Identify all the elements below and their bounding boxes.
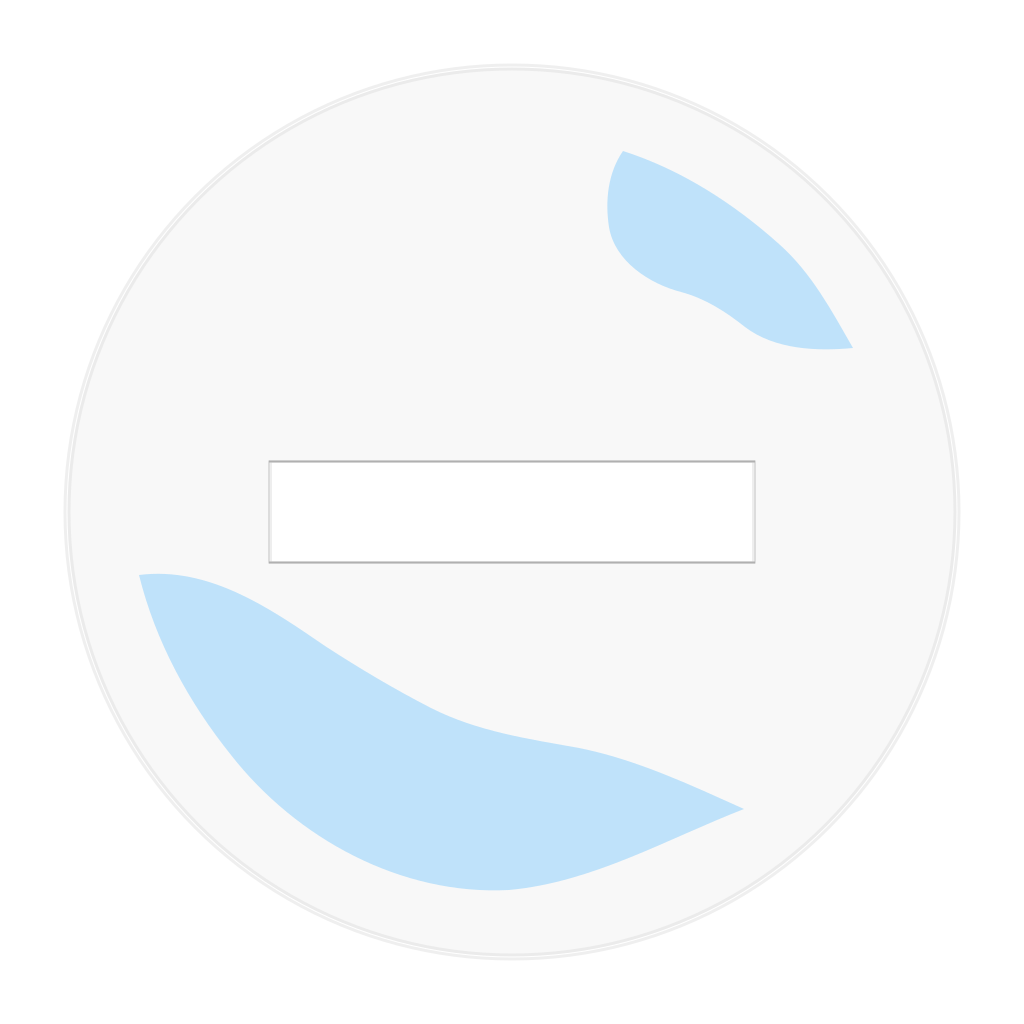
- button[interactable]: Text field: [268, 460, 756, 563]
